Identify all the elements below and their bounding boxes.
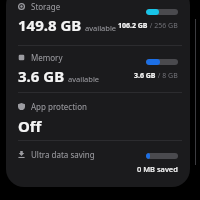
staticText: Off	[18, 116, 42, 136]
staticText: App protection	[31, 101, 87, 112]
button[interactable]: Storage	[6, 0, 190, 45]
staticText: Memory	[31, 52, 63, 63]
staticText: available	[68, 74, 100, 84]
other: Ultra data saving	[18, 151, 25, 158]
staticText: 3.6 GB	[18, 66, 65, 86]
other: Memory	[18, 54, 25, 61]
staticText: 149.8 GB	[18, 15, 82, 35]
staticText: / 256 GB	[148, 21, 178, 31]
staticText: Ultra data saving	[31, 149, 95, 160]
staticText: / 8 GB	[156, 71, 178, 81]
other: Storage	[18, 3, 25, 10]
button[interactable]: Memory	[6, 46, 190, 92]
staticText: Storage	[31, 1, 61, 12]
button[interactable]: Ultra data saving	[6, 141, 190, 179]
button[interactable]: App protection	[6, 93, 190, 140]
staticText: 3.6 GB	[134, 71, 156, 81]
staticText: available	[85, 23, 117, 33]
staticText: 106.2 GB	[118, 21, 148, 31]
other: App protection	[18, 103, 25, 110]
staticText: 0 MB saved	[137, 164, 178, 174]
